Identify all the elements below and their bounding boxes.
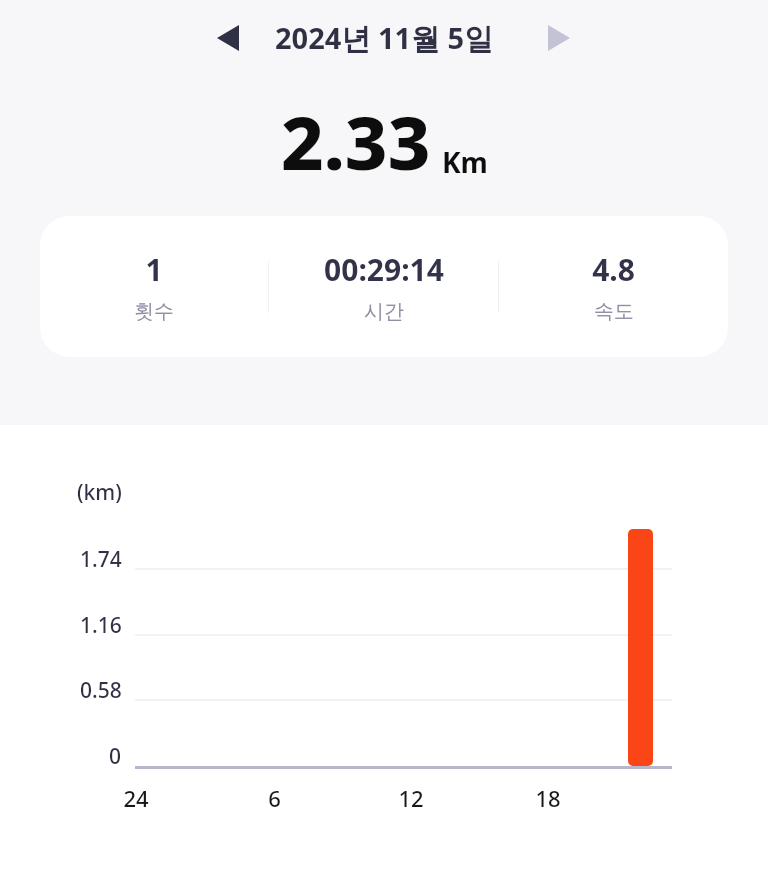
staticText: 24	[123, 783, 149, 813]
staticText: 0	[109, 742, 122, 771]
staticText: 횟수	[134, 299, 174, 324]
button[interactable]: 00:29:14	[269, 249, 498, 324]
staticText: 2024년 11월 5일	[275, 18, 494, 58]
staticText: 6	[268, 783, 281, 813]
staticText: 1	[145, 249, 163, 290]
staticText: 1.74	[80, 545, 122, 574]
staticText: 18	[535, 783, 561, 813]
staticText: (km)	[77, 478, 122, 507]
button[interactable]: 4.8	[499, 249, 728, 324]
staticText: 1.16	[80, 611, 122, 640]
button[interactable]: 다음 날짜	[528, 10, 590, 66]
staticText: 00:29:14	[324, 249, 444, 290]
staticText: 속도	[594, 299, 634, 324]
staticText: 4.8	[592, 249, 635, 290]
button[interactable]: 이전 날짜	[197, 10, 259, 66]
staticText: 2.33	[281, 91, 431, 192]
staticText: Km	[442, 143, 488, 181]
staticText: 0.58	[80, 676, 122, 705]
staticText: 시간	[364, 299, 404, 324]
button[interactable]: 1	[40, 216, 728, 357]
button[interactable]: 1	[40, 249, 268, 324]
staticText: 12	[398, 783, 424, 813]
